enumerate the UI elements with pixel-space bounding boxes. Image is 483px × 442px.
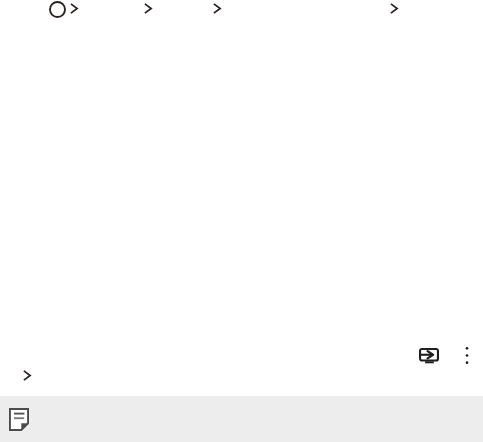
other: Document: [9, 408, 29, 431]
button[interactable]: Shared with me: [23, 366, 116, 380]
button[interactable]: Account: [49, 1, 66, 18]
button[interactable]: More options: [465, 347, 469, 364]
button[interactable]: Document: [0, 396, 483, 442]
button[interactable]: Present to screen: [419, 348, 439, 364]
